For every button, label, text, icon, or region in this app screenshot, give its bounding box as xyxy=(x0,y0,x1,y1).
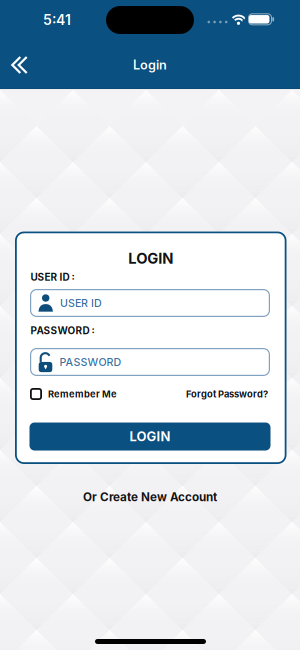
staticText: 5:41 xyxy=(43,11,71,28)
staticText: USER ID : xyxy=(30,271,74,283)
button[interactable]: Remember Me xyxy=(30,387,117,400)
staticText: Remember Me xyxy=(48,388,117,400)
staticText: PASSWORD : xyxy=(30,325,94,337)
button[interactable]: Or Create New Account xyxy=(83,490,217,504)
staticText: Login xyxy=(133,57,167,73)
staticText: Or Create New Account xyxy=(83,490,217,504)
staticText: USER ID xyxy=(60,296,102,309)
staticText: LOGIN xyxy=(128,249,173,267)
button[interactable]: User ID xyxy=(30,289,270,317)
button[interactable]: Back xyxy=(4,49,35,81)
button[interactable]: Password xyxy=(30,348,270,376)
staticText: LOGIN xyxy=(129,429,170,444)
button[interactable]: LOGIN xyxy=(29,422,270,450)
staticText: Forgot Password? xyxy=(186,388,268,400)
button[interactable]: Forgot Password? xyxy=(30,387,268,400)
staticText: PASSWORD xyxy=(59,355,121,368)
